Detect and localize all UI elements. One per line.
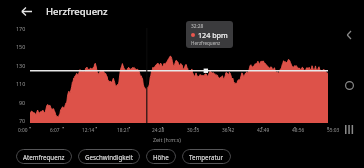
button[interactable]: Zurück bbox=[340, 26, 358, 44]
staticText: 32:28 bbox=[191, 23, 204, 30]
button[interactable]: Höhe bbox=[146, 149, 176, 164]
staticText: 30:35 bbox=[187, 127, 200, 134]
staticText: 6:07 bbox=[50, 127, 60, 134]
staticText: 124 bpm bbox=[198, 30, 228, 40]
staticText: 170 bbox=[16, 25, 26, 32]
staticText: 150 bbox=[16, 43, 26, 50]
staticText: Temperatur bbox=[189, 153, 224, 161]
staticText: 110 bbox=[16, 80, 26, 87]
staticText: Atemfrequenz bbox=[23, 153, 65, 161]
button[interactable]: Zurück bbox=[17, 2, 35, 20]
staticText: Herzfrequenz bbox=[46, 5, 108, 18]
staticText: Zeit (h:m:s) bbox=[153, 136, 181, 143]
button[interactable]: Atemfrequenz bbox=[16, 149, 72, 164]
button[interactable]: Übersicht bbox=[340, 120, 358, 138]
staticText: 18:21 bbox=[117, 127, 130, 134]
staticText: Geschwindigkeit bbox=[85, 153, 133, 161]
staticText: Herzfrequenz bbox=[191, 40, 221, 46]
staticText: 0:00 bbox=[18, 127, 28, 134]
button[interactable]: Geschwindigkeit bbox=[78, 149, 140, 164]
staticText: 42:49 bbox=[257, 127, 270, 134]
button[interactable]: Temperatur bbox=[182, 149, 231, 164]
staticText: 70 bbox=[19, 117, 26, 124]
staticText: 48:56 bbox=[292, 127, 305, 134]
staticText: 12:14 bbox=[82, 127, 95, 134]
button[interactable]: Startbildschirm bbox=[340, 76, 358, 94]
staticText: 55:03 bbox=[327, 127, 340, 134]
staticText: Höhe bbox=[153, 153, 169, 161]
button[interactable]: 32:28 bbox=[186, 21, 233, 48]
staticText: 130 bbox=[16, 62, 26, 69]
staticText: 90 bbox=[19, 99, 26, 106]
staticText: 24:28 bbox=[152, 127, 165, 134]
staticText: 36:42 bbox=[222, 127, 235, 134]
